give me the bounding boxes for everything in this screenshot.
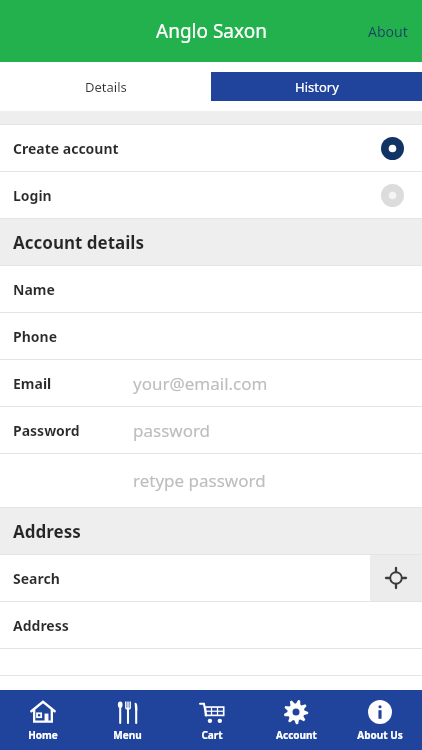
staticText: your@email.com [133, 372, 268, 395]
staticText: password [133, 419, 211, 442]
staticText: Anglo Saxon [156, 18, 267, 44]
staticText: Address [13, 616, 69, 635]
staticText: Phone [13, 327, 58, 346]
staticText: About Us [357, 728, 403, 742]
button[interactable]: Phone [0, 313, 422, 359]
button[interactable]: Home [0, 690, 85, 750]
button[interactable]: Create account [0, 125, 422, 171]
staticText: Email [13, 374, 52, 393]
staticText: Name [13, 280, 55, 299]
button[interactable]: About [354, 10, 422, 53]
staticText: Home [28, 728, 58, 742]
staticText: Password [13, 421, 80, 440]
button[interactable]: Use current location [370, 555, 422, 601]
button[interactable]: Address [0, 602, 422, 648]
staticText: Details [85, 78, 127, 96]
button[interactable]: Password [0, 407, 422, 453]
button[interactable]: Login [0, 172, 422, 218]
button[interactable]: Cart [170, 690, 254, 750]
staticText: Account details [13, 231, 144, 254]
button[interactable]: Account [254, 690, 338, 750]
staticText: About [368, 22, 408, 41]
staticText: Menu [113, 728, 142, 742]
staticText: retype password [133, 469, 266, 492]
button[interactable]: Menu [85, 690, 170, 750]
button[interactable]: Email [0, 360, 422, 406]
staticText: Account [276, 728, 317, 742]
staticText: Create account [13, 139, 119, 158]
staticText: Search [13, 569, 60, 588]
button[interactable]: Details [0, 62, 211, 111]
button[interactable]: Search [0, 555, 370, 601]
staticText: History [295, 78, 339, 96]
button[interactable]: History [211, 72, 422, 101]
staticText: Login [13, 186, 52, 205]
staticText: Cart [201, 728, 223, 742]
button[interactable]: retype password [0, 454, 422, 507]
staticText: Address [13, 520, 81, 543]
button[interactable]: Name [0, 266, 422, 312]
button[interactable]: About Us [338, 690, 422, 750]
